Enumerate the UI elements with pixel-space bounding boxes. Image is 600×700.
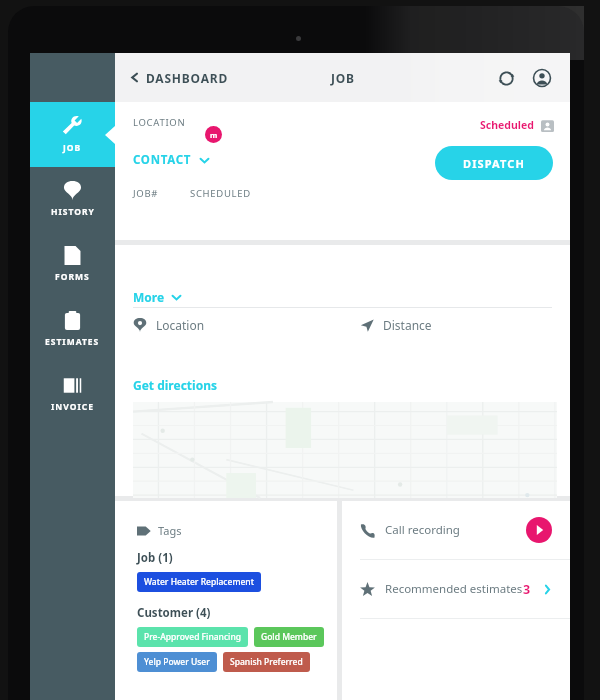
button[interactable]: Location: [133, 317, 205, 333]
staticText: Gold Member: [261, 631, 317, 643]
staticText: Yelp Power User: [144, 656, 210, 668]
staticText: Pre-Approved Financing: [144, 631, 241, 643]
staticText: Scheduled: [480, 118, 534, 132]
button[interactable]: Pre-Approved Financing: [137, 627, 248, 647]
staticText: SCHEDULED: [190, 187, 251, 200]
button[interactable]: INVOICE: [30, 362, 115, 427]
button[interactable]: Scheduled: [480, 118, 554, 132]
button[interactable]: Spanish Preferred: [223, 652, 310, 672]
staticText: m: [210, 130, 218, 140]
button[interactable]: m: [205, 126, 222, 143]
button[interactable]: More: [133, 289, 182, 305]
button[interactable]: DASHBOARD: [129, 53, 229, 102]
staticText: INVOICE: [51, 401, 94, 413]
staticText: Customer (4): [137, 605, 211, 621]
button[interactable]: CONTACT: [133, 152, 210, 168]
button[interactable]: Call recording: [342, 501, 570, 559]
button[interactable]: ESTIMATES: [30, 297, 115, 362]
button[interactable]: Account: [528, 64, 556, 92]
staticText: Tags: [158, 523, 182, 538]
button[interactable]: Gold Member: [254, 627, 324, 647]
button[interactable]: Yelp Power User: [137, 652, 217, 672]
staticText: DISPATCH: [463, 156, 525, 171]
staticText: DASHBOARD: [146, 70, 229, 86]
staticText: JOB: [331, 70, 355, 86]
staticText: More: [133, 289, 165, 305]
staticText: 3: [523, 581, 531, 598]
staticText: Spanish Preferred: [230, 656, 303, 668]
button[interactable]: HISTORY: [30, 167, 115, 232]
staticText: ESTIMATES: [45, 336, 100, 348]
button[interactable]: DISPATCH: [435, 146, 553, 180]
staticText: CONTACT: [133, 152, 192, 168]
staticText: Water Heater Replacement: [144, 576, 254, 588]
button[interactable]: Get directions: [133, 377, 217, 393]
button[interactable]: Sync: [492, 64, 520, 92]
staticText: JOB: [63, 142, 82, 154]
staticText: LOCATION: [133, 116, 186, 129]
staticText: Location: [156, 317, 205, 333]
staticText: Distance: [383, 317, 432, 333]
button[interactable]: Distance: [360, 317, 432, 333]
button[interactable]: Recommended estimates: [342, 560, 570, 618]
staticText: Get directions: [133, 377, 217, 393]
staticText: FORMS: [55, 271, 90, 283]
button[interactable]: Water Heater Replacement: [137, 572, 261, 592]
staticText: Recommended estimates: [385, 581, 523, 597]
staticText: Job (1): [137, 550, 173, 566]
staticText: HISTORY: [51, 206, 95, 218]
button[interactable]: FORMS: [30, 232, 115, 297]
button[interactable]: [133, 402, 557, 498]
staticText: Call recording: [385, 522, 460, 538]
staticText: JOB#: [133, 187, 159, 200]
button[interactable]: JOB: [30, 102, 115, 167]
